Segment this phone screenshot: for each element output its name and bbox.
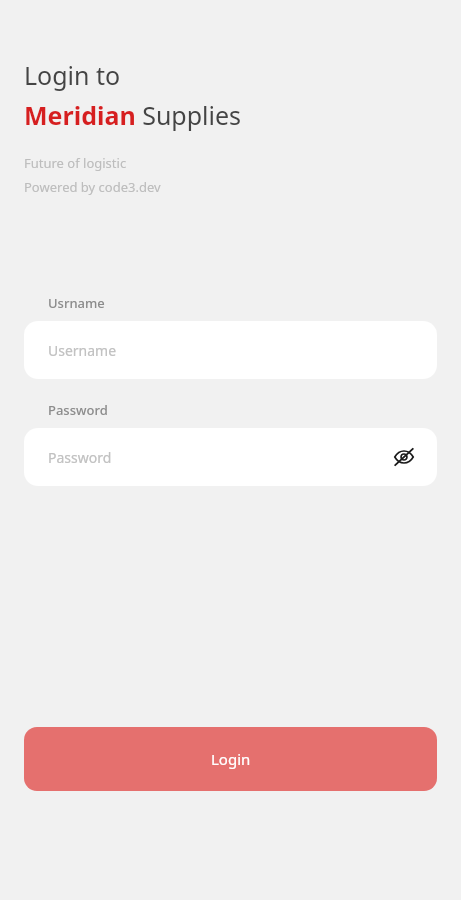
staticText: Username bbox=[48, 341, 117, 360]
button[interactable]: Login bbox=[24, 727, 437, 791]
staticText: Login to bbox=[24, 58, 121, 92]
staticText: Login bbox=[211, 749, 251, 769]
staticText: Usrname bbox=[48, 294, 105, 312]
staticText: Password bbox=[48, 401, 108, 419]
staticText: Meridian Supplies bbox=[24, 98, 242, 132]
staticText: Powered by code3.dev bbox=[24, 178, 161, 196]
staticText: Password bbox=[48, 448, 112, 467]
staticText: Future of logistic bbox=[24, 154, 127, 172]
button[interactable]: Show password bbox=[389, 442, 419, 472]
button[interactable]: Password bbox=[24, 428, 437, 486]
button[interactable]: Username bbox=[24, 321, 437, 379]
